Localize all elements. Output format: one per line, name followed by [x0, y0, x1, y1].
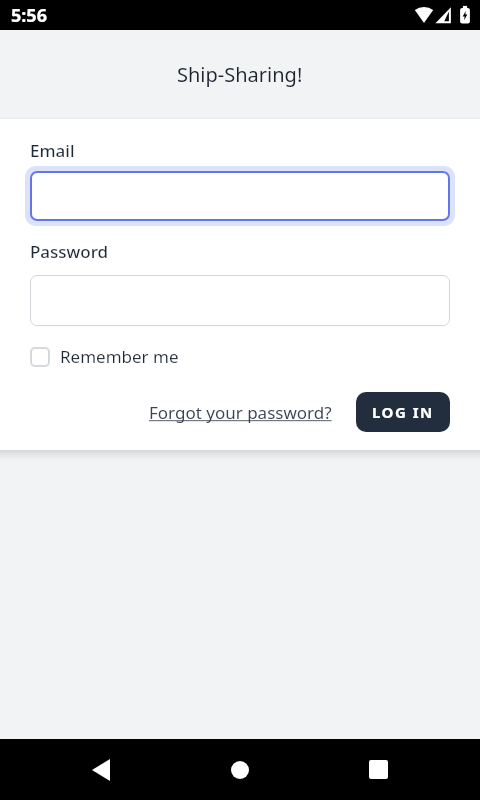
- staticText: LOG IN: [372, 402, 434, 422]
- button[interactable]: LOG IN: [356, 392, 450, 432]
- staticText: Remember me: [60, 345, 179, 368]
- button[interactable]: [231, 761, 249, 779]
- button[interactable]: Remember me: [30, 345, 179, 368]
- button[interactable]: [92, 759, 110, 781]
- button[interactable]: [30, 171, 450, 221]
- staticText: Ship-Sharing!: [177, 61, 303, 88]
- button[interactable]: [369, 760, 388, 779]
- button[interactable]: Forgot your password?: [149, 401, 332, 424]
- staticText: Password: [30, 240, 109, 263]
- button[interactable]: [30, 275, 450, 326]
- staticText: 5:56: [11, 3, 47, 28]
- staticText: Email: [30, 139, 75, 162]
